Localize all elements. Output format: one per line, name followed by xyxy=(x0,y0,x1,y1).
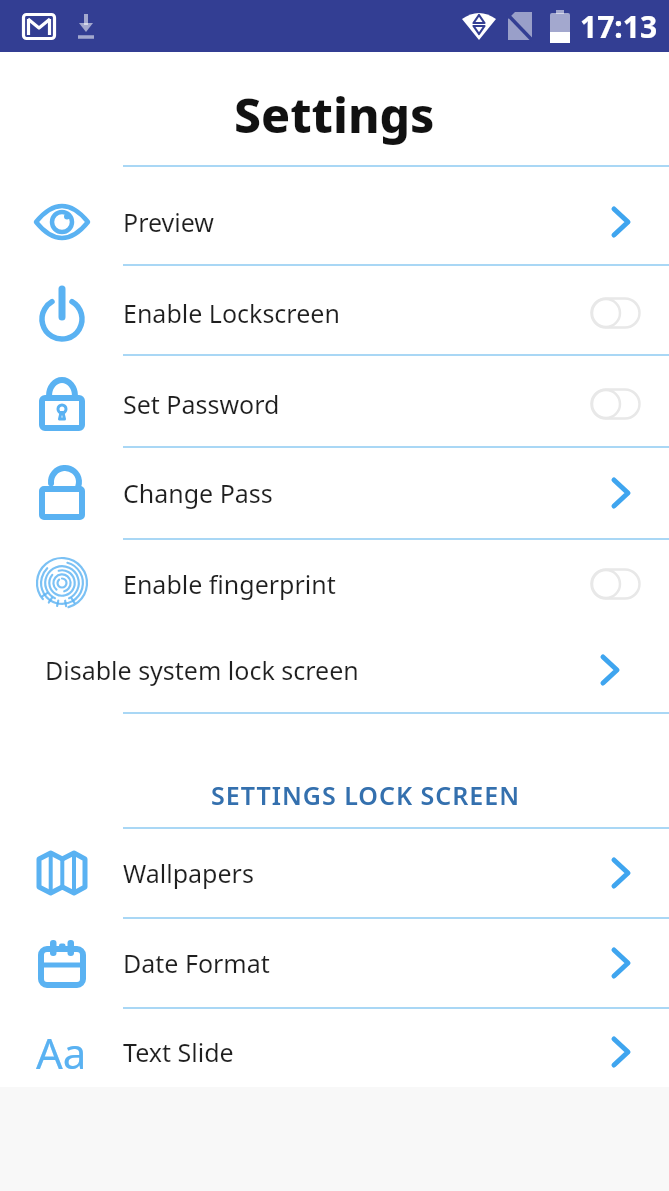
button[interactable]: Enable Lockscreen xyxy=(0,266,669,354)
button[interactable]: Change Pass xyxy=(0,448,669,538)
staticText: Preview xyxy=(123,205,612,239)
staticText: Settings xyxy=(234,82,435,147)
button[interactable]: Disable system lock screen xyxy=(0,628,669,712)
button[interactable]: Wallpapers xyxy=(0,829,669,917)
staticText: Enable Lockscreen xyxy=(123,296,590,330)
button[interactable]: Set Password xyxy=(0,356,669,446)
staticText: SETTINGS LOCK SCREEN xyxy=(211,778,521,812)
staticText: Set Password xyxy=(123,387,590,421)
staticText: Change Pass xyxy=(123,476,612,510)
button[interactable]: Enable fingerprint xyxy=(0,540,669,628)
button[interactable]: Preview xyxy=(0,167,669,264)
staticText: Date Format xyxy=(123,946,612,980)
staticText: 17:13 xyxy=(580,6,658,47)
staticText: Enable fingerprint xyxy=(123,567,590,601)
staticText: Wallpapers xyxy=(123,856,612,890)
staticText: Disable system lock screen xyxy=(45,653,601,687)
button[interactable]: Date Format xyxy=(0,919,669,1007)
staticText: Aa xyxy=(36,1024,87,1081)
button[interactable]: Aa xyxy=(0,1009,669,1087)
staticText: Text Slide xyxy=(123,1035,612,1069)
